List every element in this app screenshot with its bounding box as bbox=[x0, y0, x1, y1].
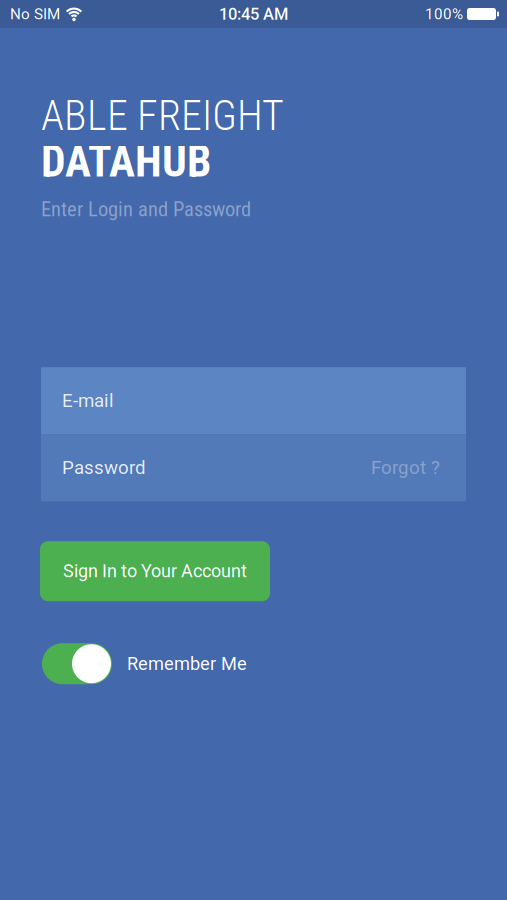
button[interactable]: E-mail bbox=[41, 367, 466, 434]
staticText: E-mail bbox=[62, 390, 114, 412]
button[interactable]: Remember Me bbox=[42, 643, 247, 684]
button[interactable]: Sign In to Your Account bbox=[40, 541, 270, 601]
staticText: Enter Login and Password bbox=[41, 197, 251, 221]
staticText: Sign In to Your Account bbox=[63, 561, 247, 582]
staticText: ABLE FREIGHT bbox=[41, 91, 284, 140]
staticText: Forgot ? bbox=[371, 457, 440, 479]
staticText: DATAHUB bbox=[41, 136, 211, 187]
staticText: 100% bbox=[425, 5, 463, 23]
button[interactable]: Forgot ? bbox=[371, 434, 466, 501]
staticText: 10:45 AM bbox=[219, 4, 288, 24]
staticText: Remember Me bbox=[127, 653, 247, 674]
staticText: No SIM bbox=[10, 5, 60, 23]
button[interactable]: Password bbox=[41, 434, 371, 501]
staticText: Password bbox=[62, 457, 146, 479]
